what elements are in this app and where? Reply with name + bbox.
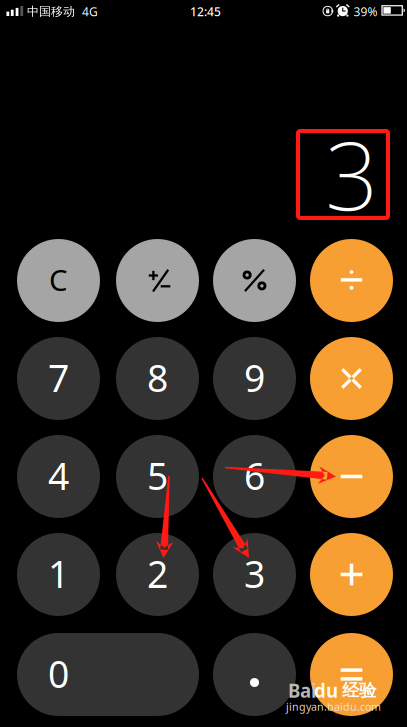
button[interactable]: 0 — [17, 633, 199, 716]
button[interactable]: 9 — [213, 337, 296, 420]
staticText: 0 — [48, 649, 69, 698]
button[interactable]: 6 — [213, 435, 296, 518]
staticText: 6 — [244, 451, 265, 500]
button[interactable]: C — [17, 239, 100, 322]
staticText: 8 — [147, 353, 168, 402]
button[interactable] — [310, 633, 393, 716]
staticText: 5 — [147, 451, 168, 500]
staticText: 1 — [48, 549, 69, 598]
button[interactable] — [310, 533, 393, 616]
staticText: 4 — [48, 451, 69, 500]
staticText: 3 — [325, 112, 378, 236]
staticText: 2 — [147, 549, 168, 598]
button[interactable]: 2 — [116, 533, 199, 616]
button[interactable]: 7 — [17, 337, 100, 420]
button[interactable] — [310, 239, 393, 322]
button[interactable]: 5 — [116, 435, 199, 518]
staticText: 7 — [48, 353, 69, 402]
staticText: 39% — [353, 3, 377, 19]
staticText: jingyan.baidu.com — [286, 699, 381, 714]
staticText: 9 — [244, 353, 265, 402]
staticText: 4G — [82, 3, 98, 19]
staticText: 经验 — [342, 680, 376, 701]
button[interactable] — [310, 337, 393, 420]
button[interactable]: 1 — [17, 533, 100, 616]
staticText: du — [314, 678, 338, 703]
staticText: 3 — [244, 549, 265, 598]
button[interactable] — [213, 633, 296, 716]
button[interactable]: 8 — [116, 337, 199, 420]
button[interactable] — [310, 435, 393, 518]
staticText: Bai — [288, 678, 317, 703]
button[interactable]: 3 — [213, 533, 296, 616]
button[interactable]: 4 — [17, 435, 100, 518]
button[interactable] — [116, 239, 199, 322]
staticText: C — [49, 260, 68, 299]
staticText: 12:45 — [190, 3, 221, 19]
staticText: 中国移动 — [27, 4, 75, 19]
button[interactable] — [213, 239, 296, 322]
